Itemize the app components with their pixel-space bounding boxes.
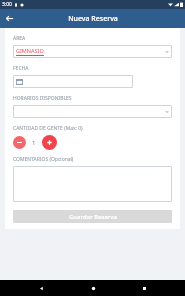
- button[interactable]: Pick date: [13, 75, 133, 88]
- staticText: COMENTARIOS (Opcional): [13, 156, 74, 163]
- button[interactable]: Decrease: [13, 136, 26, 149]
- staticText: Nueva Reserva: [68, 14, 118, 24]
- staticText: FECHA: [13, 65, 29, 72]
- staticText: HORARIOS DISPONIBLES: [13, 95, 72, 102]
- staticText: 1: [32, 139, 36, 147]
- button[interactable]: Guardar Reserva: [13, 210, 172, 223]
- button[interactable]: Select time: [13, 105, 172, 118]
- staticText: ÁREA: [13, 35, 26, 42]
- staticText: GIMNASIO: [16, 47, 44, 54]
- button[interactable]: Recent apps: [137, 281, 151, 295]
- button[interactable]: Increase: [42, 135, 57, 150]
- button[interactable]: Back: [0, 9, 19, 28]
- button[interactable]: Home: [86, 281, 100, 295]
- button[interactable]: Back: [34, 281, 48, 295]
- button[interactable]: GIMNASIO: [13, 45, 172, 58]
- staticText: Guardar Reserva: [69, 213, 117, 221]
- staticText: 3:00: [2, 1, 12, 8]
- staticText: CANTIDAD DE GENTE (Max: 0): [13, 125, 83, 132]
- button[interactable]: Comments: [13, 166, 172, 202]
